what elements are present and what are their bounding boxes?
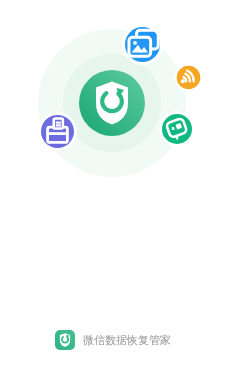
staticText: 微信数据恢复管家 [83, 333, 171, 347]
other: WeChat data recovery illustration [0, 0, 225, 200]
button[interactable]: 微信数据恢复管家 [47, 326, 179, 354]
